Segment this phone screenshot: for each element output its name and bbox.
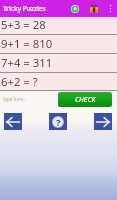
staticText: 5+3 = 28	[1, 17, 46, 32]
staticText: type here..	[3, 96, 26, 102]
button[interactable]: CHECK	[58, 92, 112, 107]
staticText: 7+4 = 311	[1, 55, 53, 70]
button[interactable]: Previous	[4, 113, 22, 130]
button[interactable]: Next	[94, 113, 112, 130]
staticText: 6+2 = ?	[1, 74, 38, 89]
staticText: Tricky Puzzles	[3, 4, 46, 13]
button[interactable]: More options	[104, 0, 117, 17]
button[interactable]: Help	[49, 113, 67, 130]
button[interactable]: Gift	[86, 0, 101, 17]
staticText: CHECK	[75, 95, 96, 105]
staticText: ?	[56, 116, 61, 128]
staticText: 9+1 = 810	[1, 36, 53, 51]
button[interactable]: Share on WhatsApp	[67, 0, 82, 17]
